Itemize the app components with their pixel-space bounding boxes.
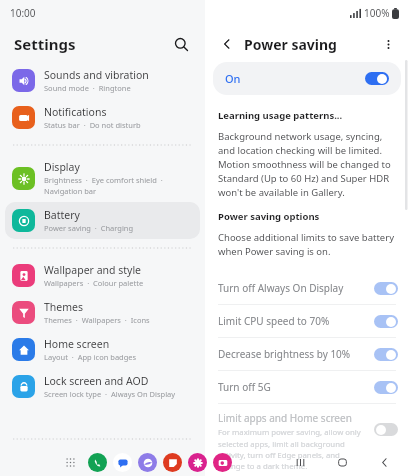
button[interactable]: Display <box>5 154 200 202</box>
button[interactable]: Limit apps and Home screen <box>205 404 409 471</box>
button[interactable]: Messages <box>113 453 132 472</box>
button[interactable]: Home screen <box>5 331 200 368</box>
button[interactable]: Search <box>167 30 195 58</box>
staticText: Themes <box>44 300 84 314</box>
staticText: Sounds and vibration <box>44 68 149 82</box>
button[interactable]: Turn off Always On Display <box>205 272 409 304</box>
staticText: Limit CPU speed to 70% <box>218 314 330 328</box>
button[interactable] <box>374 315 398 328</box>
button[interactable]: Decrease brightness by 10% <box>205 338 409 370</box>
button[interactable]: Sounds and vibration <box>5 62 200 99</box>
button[interactable] <box>374 348 398 361</box>
button[interactable]: Camera <box>213 453 232 472</box>
button[interactable]: Notifications <box>5 99 200 136</box>
button[interactable]: On <box>213 62 401 95</box>
staticText: Battery <box>44 208 80 222</box>
staticText: Navigation bar <box>44 186 97 196</box>
staticText: Notifications <box>44 105 107 119</box>
button[interactable]: Themes <box>5 294 200 331</box>
staticText: Decrease brightness by 10% <box>218 347 351 361</box>
button[interactable]: Phone <box>88 453 107 472</box>
button[interactable]: Galaxy Store <box>188 453 207 472</box>
button[interactable]: Back <box>214 31 240 57</box>
staticText: Layout · App icon badges <box>44 352 137 362</box>
button[interactable]: Battery <box>5 202 200 239</box>
staticText: Screen lock type · Always On Display <box>44 389 176 399</box>
staticText: Choose additional limits to save battery… <box>218 231 396 258</box>
button[interactable]: Internet <box>138 453 157 472</box>
staticText: Power saving options <box>218 210 320 223</box>
button[interactable]: Apps <box>60 452 80 472</box>
button[interactable] <box>365 72 389 85</box>
button[interactable]: Home <box>329 449 355 475</box>
button[interactable]: Back <box>371 449 397 475</box>
staticText: Status bar · Do not disturb <box>44 120 141 130</box>
button[interactable] <box>374 381 398 394</box>
staticText: Learning usage patterns... <box>218 109 343 122</box>
staticText: Power saving <box>244 35 337 54</box>
staticText: On <box>225 71 241 86</box>
staticText: Themes · Wallpapers · Icons <box>44 315 150 325</box>
staticText: Background network usage, syncing, and l… <box>218 130 396 199</box>
button[interactable]: More options <box>375 31 401 57</box>
staticText: Brightness · Eye comfort shield · <box>44 175 163 185</box>
staticText: Turn off 5G <box>218 380 271 394</box>
staticText: 100% <box>364 6 390 20</box>
staticText: Home screen <box>44 337 110 351</box>
button[interactable]: Limit CPU speed to 70% <box>205 305 409 337</box>
button[interactable]: Recents <box>287 449 313 475</box>
staticText: Display <box>44 160 80 174</box>
button[interactable] <box>374 282 398 295</box>
staticText: For maximum power saving, allow only sel… <box>218 427 366 471</box>
button[interactable]: Turn off 5G <box>205 371 409 403</box>
button[interactable]: Lock screen and AOD <box>5 368 200 405</box>
button[interactable]: Notes <box>163 453 182 472</box>
staticText: Wallpaper and style <box>44 263 142 277</box>
staticText: Wallpapers · Colour palette <box>44 278 144 288</box>
staticText: Sound mode · Ringtone <box>44 83 131 93</box>
staticText: Limit apps and Home screen <box>218 411 352 425</box>
staticText: Turn off Always On Display <box>218 281 344 295</box>
staticText: Settings <box>14 34 76 54</box>
staticText: Power saving · Charging <box>44 223 134 233</box>
staticText: 10:00 <box>10 6 36 20</box>
button[interactable]: Wallpaper and style <box>5 257 200 294</box>
staticText: Lock screen and AOD <box>44 374 149 388</box>
button[interactable] <box>374 423 398 436</box>
